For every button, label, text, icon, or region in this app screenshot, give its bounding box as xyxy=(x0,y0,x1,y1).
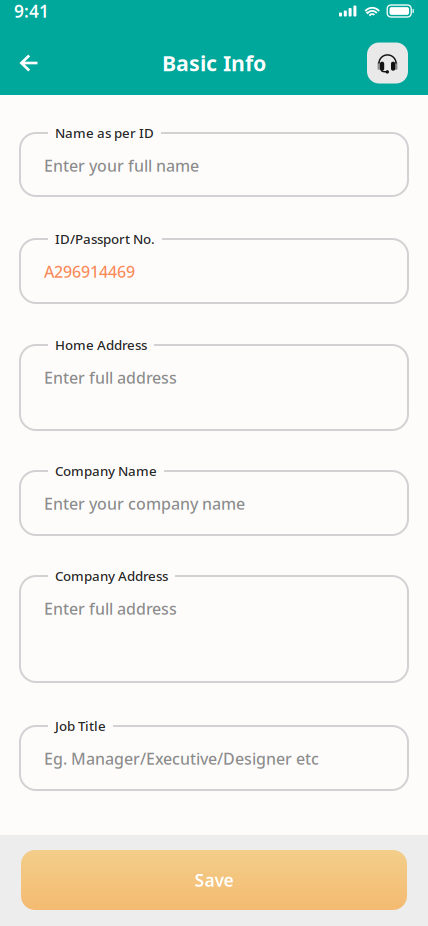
staticText: Enter your full name xyxy=(44,155,199,176)
button[interactable]: Back xyxy=(7,41,51,85)
staticText: Home Address xyxy=(55,336,147,354)
button[interactable]: Save xyxy=(21,850,407,910)
staticText: Enter full address xyxy=(44,367,177,388)
staticText: Company Address xyxy=(55,567,168,585)
button[interactable]: Contact support xyxy=(367,42,408,83)
staticText: Name as per ID xyxy=(55,124,154,142)
staticText: Job Title xyxy=(55,717,106,735)
staticText: Save xyxy=(194,868,233,891)
staticText: Enter your company name xyxy=(44,493,245,514)
staticText: ID/Passport No. xyxy=(55,230,155,248)
staticText: 9:41 xyxy=(14,0,49,22)
staticText: Basic Info xyxy=(162,49,266,77)
staticText: A296914469 xyxy=(44,261,135,282)
staticText: Company Name xyxy=(55,462,157,480)
staticText: Enter full address xyxy=(44,598,177,619)
staticText: Eg. Manager/Executive/Designer etc xyxy=(44,748,319,769)
